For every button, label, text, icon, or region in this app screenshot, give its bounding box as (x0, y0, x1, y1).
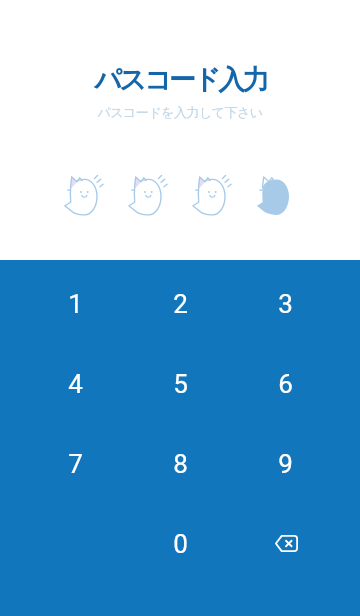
staticText: 0 (173, 529, 188, 559)
staticText: 9 (278, 449, 293, 479)
staticText: 2 (173, 289, 188, 319)
staticText: 3 (278, 289, 293, 319)
staticText: 1 (68, 289, 83, 319)
staticText: 4 (68, 369, 83, 399)
button[interactable]: 5 (128, 344, 233, 424)
button[interactable]: 9 (233, 424, 338, 504)
staticText: 5 (173, 369, 188, 399)
button[interactable]: 4 (23, 344, 128, 424)
button[interactable]: 6 (233, 344, 338, 424)
staticText: 6 (278, 369, 293, 399)
button[interactable]: 8 (128, 424, 233, 504)
button[interactable]: 1 (23, 264, 128, 344)
staticText: 7 (68, 449, 83, 479)
button[interactable]: 3 (233, 264, 338, 344)
button[interactable]: 0 (128, 504, 233, 584)
button[interactable]: Delete (233, 504, 338, 584)
other: Delete (275, 535, 298, 552)
staticText: パスコード入力 (94, 63, 267, 97)
button[interactable]: 2 (128, 264, 233, 344)
staticText: 8 (173, 449, 188, 479)
button[interactable]: 7 (23, 424, 128, 504)
staticText: パスコードを入力して下さい (97, 104, 263, 120)
